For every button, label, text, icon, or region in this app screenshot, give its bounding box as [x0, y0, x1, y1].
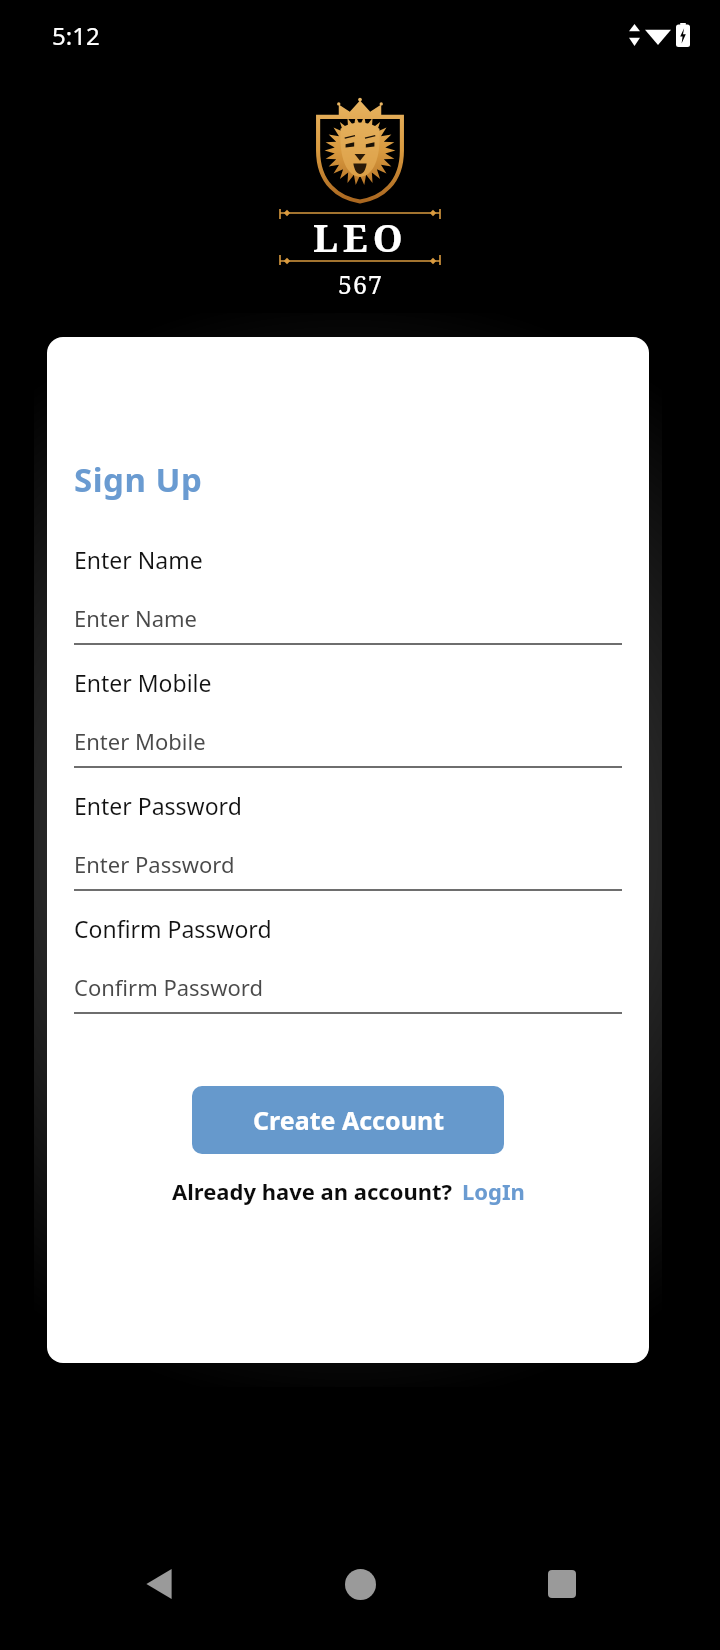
staticText: Confirm Password	[74, 913, 272, 944]
staticText: Enter Name	[74, 544, 203, 575]
staticText: Sign Up	[74, 457, 203, 502]
staticText: Enter Password	[74, 790, 242, 821]
staticText: LogIn	[462, 1176, 525, 1206]
staticText: 5:12	[52, 19, 100, 52]
button[interactable]: Back	[116, 1541, 202, 1627]
staticText: Already have an account?	[172, 1176, 453, 1206]
button[interactable]: Recent apps	[519, 1541, 605, 1627]
button[interactable]: Enter Name	[74, 603, 622, 645]
staticText: 567	[338, 267, 383, 301]
button[interactable]: Home	[317, 1541, 403, 1627]
button[interactable]: Enter Mobile	[74, 726, 622, 768]
staticText: Enter Password	[74, 849, 235, 879]
staticText: Create Account	[253, 1103, 444, 1137]
staticText: Enter Mobile	[74, 726, 206, 756]
staticText: Enter Mobile	[74, 667, 212, 698]
staticText: Confirm Password	[74, 972, 263, 1002]
staticText: LEO	[313, 211, 408, 263]
button[interactable]: Enter Password	[74, 849, 622, 891]
button[interactable]: Confirm Password	[74, 972, 622, 1014]
staticText: Enter Name	[74, 603, 198, 633]
button[interactable]: Already have an account?	[172, 1176, 525, 1206]
button[interactable]: Create Account	[192, 1086, 504, 1154]
